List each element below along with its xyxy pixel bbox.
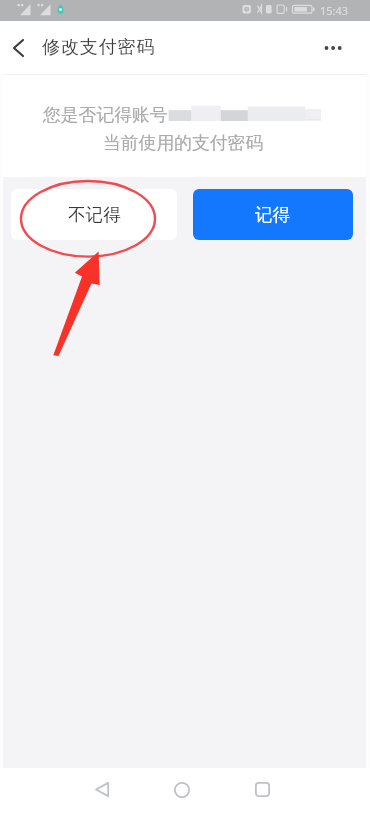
staticText: 不记得 (68, 204, 121, 226)
staticText: 修改支付密码 (42, 36, 156, 59)
button[interactable]: Back (3, 21, 33, 74)
button[interactable]: 记得 (193, 189, 353, 240)
staticText: 当前使用的支付密码 (103, 132, 264, 154)
staticText: 您是否记得账号 (43, 104, 168, 126)
button[interactable]: Recents (242, 768, 282, 811)
staticText: 15:43 (320, 3, 349, 18)
button[interactable]: Back (82, 768, 122, 811)
staticText: 记得 (255, 204, 291, 226)
button[interactable]: Home (162, 768, 202, 811)
button[interactable]: More options (312, 21, 356, 74)
button[interactable]: 不记得 (11, 189, 177, 240)
